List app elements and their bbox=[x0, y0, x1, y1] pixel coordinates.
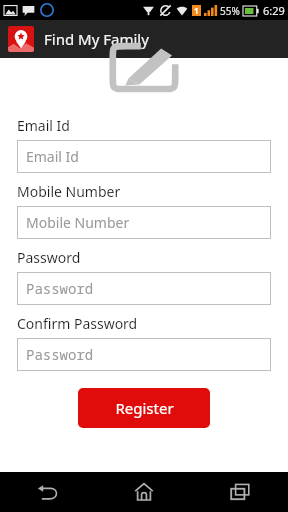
button[interactable]: Home bbox=[96, 472, 192, 512]
staticText: 55% bbox=[220, 4, 240, 18]
button[interactable]: Mobile Number bbox=[17, 206, 271, 239]
button[interactable]: Back bbox=[0, 472, 96, 512]
staticText: Email Id bbox=[17, 116, 70, 135]
button[interactable]: Recent apps bbox=[192, 472, 288, 512]
staticText: Password bbox=[17, 248, 81, 267]
button[interactable]: Password bbox=[17, 338, 271, 371]
staticText: Email Id bbox=[26, 147, 79, 166]
staticText: 1 bbox=[194, 5, 199, 16]
staticText: Password bbox=[26, 345, 94, 364]
staticText: Password bbox=[26, 279, 94, 298]
button[interactable]: Password bbox=[17, 272, 271, 305]
button[interactable]: Register bbox=[78, 388, 210, 428]
button[interactable]: Email Id bbox=[17, 140, 271, 173]
other: App logo bbox=[8, 26, 34, 52]
staticText: Mobile Number bbox=[26, 213, 130, 232]
staticText: 6:29 bbox=[263, 3, 285, 18]
staticText: Confirm Password bbox=[17, 314, 138, 333]
staticText: Register bbox=[115, 398, 174, 418]
staticText: Mobile Number bbox=[17, 182, 121, 201]
staticText: Find My Family bbox=[44, 29, 149, 49]
